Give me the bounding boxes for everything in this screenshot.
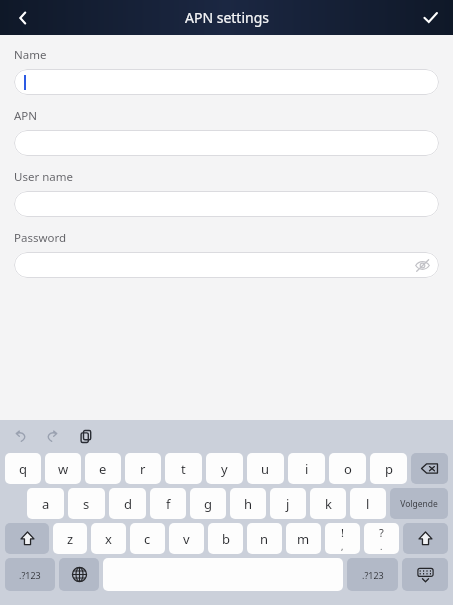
staticText: APN — [14, 108, 38, 124]
button[interactable]: j — [270, 488, 306, 519]
button[interactable]: e — [85, 453, 121, 484]
staticText: o — [344, 460, 352, 478]
staticText: s — [83, 495, 90, 513]
button[interactable]: l — [350, 488, 386, 519]
staticText: ! — [341, 525, 344, 540]
staticText: .?123 — [362, 569, 384, 581]
button[interactable]: w — [45, 453, 81, 484]
staticText: z — [67, 530, 74, 548]
button[interactable]: n — [247, 523, 282, 554]
button[interactable] — [14, 69, 439, 95]
button[interactable]: q — [5, 453, 41, 484]
button[interactable]: Volgende — [390, 488, 448, 519]
staticText: k — [325, 495, 332, 513]
button[interactable]: .?123 — [5, 558, 55, 591]
button[interactable]: m — [286, 523, 321, 554]
button[interactable]: h — [230, 488, 266, 519]
button[interactable]: Shift — [5, 523, 49, 554]
staticText: f — [166, 495, 171, 513]
button[interactable]: .?123 — [347, 558, 398, 591]
button[interactable]: y — [206, 453, 243, 484]
staticText: w — [58, 460, 69, 478]
staticText: APN settings — [185, 8, 269, 27]
button[interactable]: x — [91, 523, 126, 554]
staticText: y — [221, 460, 228, 478]
button[interactable]: i — [288, 453, 325, 484]
button[interactable]: r — [125, 453, 161, 484]
button[interactable]: Redo — [40, 424, 64, 448]
staticText: ? — [379, 525, 384, 540]
button[interactable]: ? — [364, 523, 399, 554]
staticText: . — [380, 540, 383, 552]
staticText: b — [222, 530, 230, 548]
button[interactable] — [14, 191, 439, 217]
button[interactable]: Backspace — [411, 453, 448, 484]
button[interactable]: Change language — [59, 558, 99, 591]
staticText: .?123 — [19, 569, 41, 581]
button[interactable]: k — [310, 488, 346, 519]
staticText: l — [366, 495, 370, 513]
staticText: r — [140, 460, 146, 478]
staticText: e — [99, 460, 107, 478]
button[interactable]: g — [190, 488, 226, 519]
button[interactable]: Back — [0, 0, 46, 35]
button[interactable]: f — [150, 488, 186, 519]
button[interactable]: Undo — [8, 424, 32, 448]
button[interactable]: u — [247, 453, 284, 484]
button[interactable]: ! — [325, 523, 360, 554]
staticText: a — [42, 495, 50, 513]
button[interactable]: Show password — [414, 257, 431, 274]
button[interactable]: d — [109, 488, 146, 519]
button[interactable]: z — [53, 523, 87, 554]
staticText: m — [297, 530, 310, 548]
staticText: p — [385, 460, 393, 478]
staticText: q — [19, 460, 27, 478]
button[interactable]: p — [370, 453, 407, 484]
button[interactable]: s — [68, 488, 105, 519]
staticText: g — [204, 495, 212, 513]
button[interactable] — [14, 130, 439, 156]
staticText: u — [261, 460, 270, 478]
button[interactable]: t — [165, 453, 202, 484]
staticText: j — [286, 495, 290, 513]
staticText: Volgende — [400, 498, 438, 510]
staticText: n — [260, 530, 269, 548]
button[interactable]: Shift — [403, 523, 448, 554]
button[interactable]: o — [329, 453, 366, 484]
button[interactable]: Clipboard — [74, 424, 98, 448]
button[interactable]: v — [169, 523, 204, 554]
staticText: d — [124, 495, 132, 513]
staticText: , — [341, 540, 344, 552]
staticText: Password — [14, 230, 67, 246]
staticText: x — [105, 530, 112, 548]
staticText: User name — [14, 169, 73, 185]
button[interactable]: b — [208, 523, 243, 554]
button[interactable]: a — [27, 488, 64, 519]
button[interactable]: Save — [407, 0, 453, 35]
staticText: c — [144, 530, 151, 548]
button[interactable]: c — [130, 523, 165, 554]
staticText: t — [181, 460, 186, 478]
staticText: h — [244, 495, 253, 513]
staticText: v — [183, 530, 190, 548]
staticText: i — [305, 460, 309, 478]
button[interactable]: Hide keyboard — [402, 558, 448, 591]
staticText: Name — [14, 47, 47, 63]
button[interactable]: Show password — [14, 252, 439, 278]
